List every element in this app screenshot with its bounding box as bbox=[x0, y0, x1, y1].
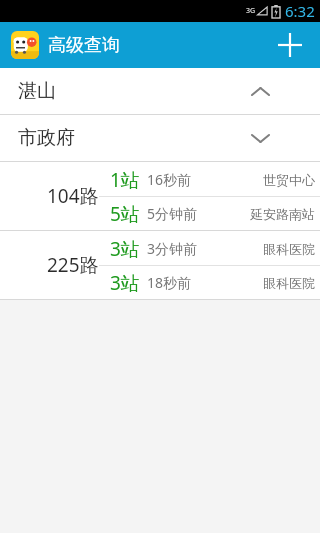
staticText: 3站 bbox=[110, 236, 140, 262]
staticText: 104路 bbox=[47, 183, 99, 209]
staticText: 6:32 bbox=[285, 1, 315, 21]
staticText: 16秒前 bbox=[147, 170, 192, 189]
staticText: 世贸中心 bbox=[263, 172, 315, 188]
staticText: 高级查询 bbox=[48, 34, 120, 57]
staticText: 延安路南站 bbox=[250, 206, 315, 222]
staticText: 眼科医院 bbox=[263, 275, 315, 291]
staticText: 1站 bbox=[110, 167, 140, 193]
staticText: 3分钟前 bbox=[147, 239, 198, 258]
staticText: 市政府 bbox=[18, 126, 75, 150]
staticText: 3站 bbox=[110, 270, 140, 296]
staticText: 225路 bbox=[47, 252, 99, 278]
staticText: 5分钟前 bbox=[147, 204, 198, 223]
button[interactable]: 104路 bbox=[0, 162, 320, 230]
button[interactable]: 225路 bbox=[0, 231, 320, 299]
staticText: 眼科医院 bbox=[263, 241, 315, 257]
button[interactable]: Add bbox=[270, 25, 310, 65]
button[interactable]: 市政府 bbox=[0, 115, 320, 161]
staticText: 3G bbox=[246, 6, 256, 16]
staticText: 湛山 bbox=[18, 79, 56, 103]
staticText: 18秒前 bbox=[147, 273, 192, 292]
button[interactable]: 湛山 bbox=[0, 68, 320, 114]
staticText: 5站 bbox=[110, 201, 140, 227]
